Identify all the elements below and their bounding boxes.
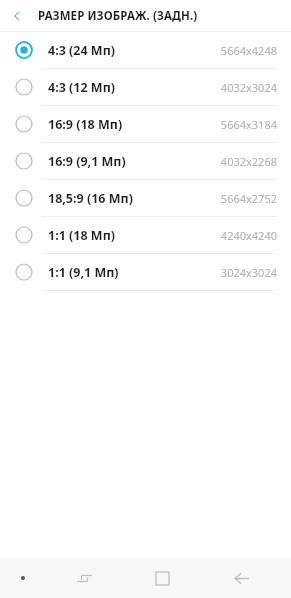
button[interactable]: 1:1 (18 Мп) <box>0 217 291 253</box>
button[interactable]: Недавние приложения <box>45 558 123 598</box>
staticText: 16:9 (9,1 Мп) <box>48 153 126 170</box>
staticText: 18,5:9 (16 Мп) <box>48 190 133 207</box>
staticText: 4032x2268 <box>220 154 277 169</box>
staticText: РАЗМЕР ИЗОБРАЖ. (ЗАДН.) <box>38 8 198 24</box>
button[interactable]: 16:9 (18 Мп) <box>0 106 291 142</box>
button[interactable]: 16:9 (9,1 Мп) <box>0 143 291 179</box>
staticText: 4032x3024 <box>220 80 277 95</box>
staticText: 1:1 (18 Мп) <box>48 227 116 244</box>
button[interactable]: 4:3 (24 Мп) <box>0 32 291 68</box>
staticText: 4:3 (24 Мп) <box>48 42 116 59</box>
button[interactable]: 4:3 (12 Мп) <box>0 69 291 105</box>
button[interactable]: Назад <box>202 558 281 598</box>
staticText: 5664x4248 <box>220 43 277 58</box>
staticText: 16:9 (18 Мп) <box>48 116 123 133</box>
button[interactable]: Индикатор <box>0 558 45 598</box>
button[interactable]: 18,5:9 (16 Мп) <box>0 180 291 216</box>
staticText: 5664x2752 <box>220 191 277 206</box>
staticText: 3024x3024 <box>220 265 277 280</box>
staticText: 4:3 (12 Мп) <box>48 79 116 96</box>
button[interactable]: Главный экран <box>123 558 202 598</box>
staticText: 4240x4240 <box>220 228 277 243</box>
staticText: 5664x3184 <box>220 117 277 132</box>
staticText: 1:1 (9,1 Мп) <box>48 264 119 281</box>
button[interactable]: 1:1 (9,1 Мп) <box>0 254 291 290</box>
button[interactable]: Назад <box>0 0 34 31</box>
